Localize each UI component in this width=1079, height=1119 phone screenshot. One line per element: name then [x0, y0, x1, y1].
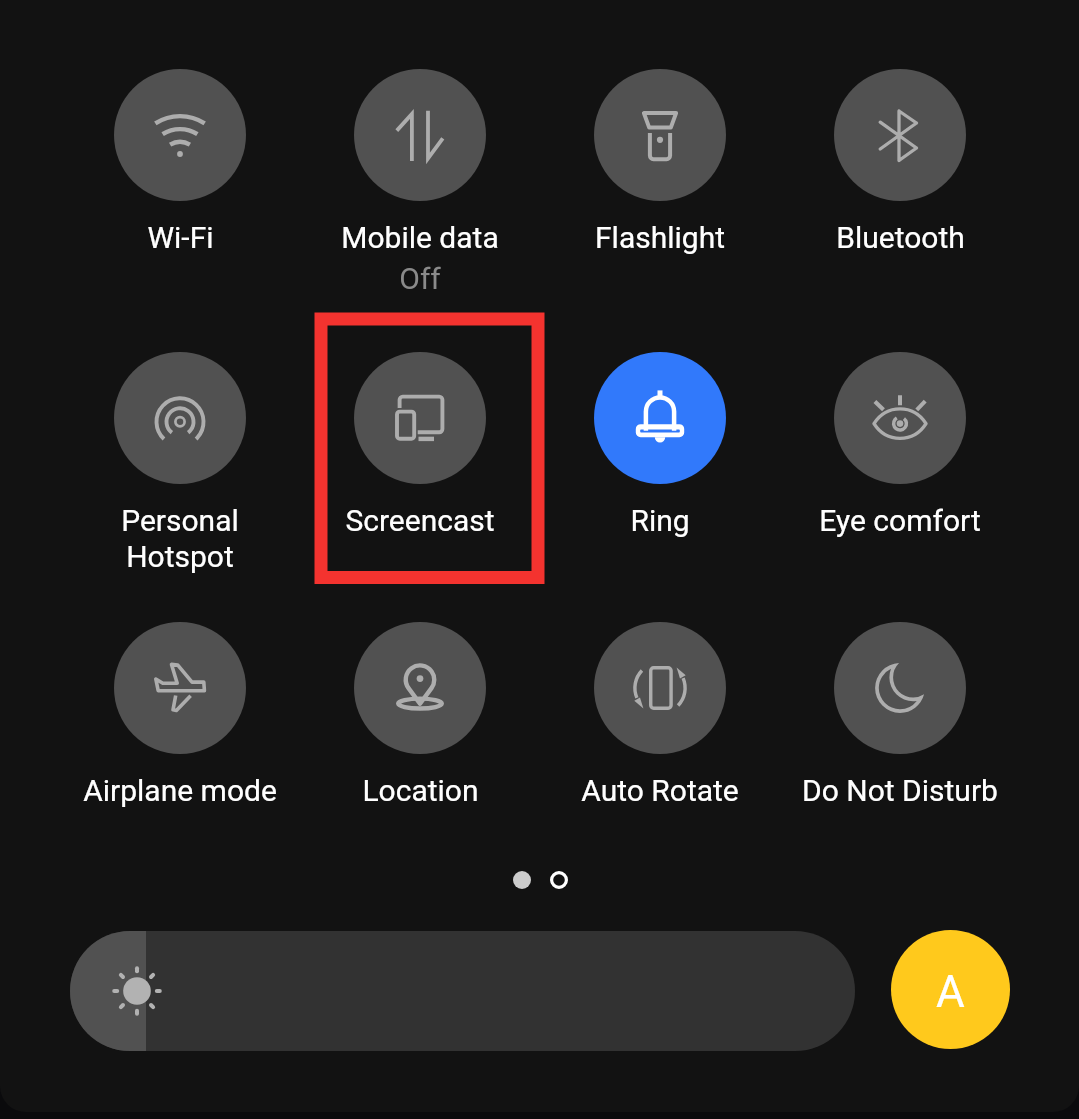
staticText: Screencast [345, 503, 495, 538]
staticText: Ring [630, 503, 690, 538]
staticText: Eye comfort [819, 503, 981, 538]
button[interactable]: Screencast [300, 352, 540, 538]
staticText: Wi-Fi [147, 220, 214, 255]
button[interactable]: Page 1 [513, 871, 531, 889]
button[interactable]: Eye comfort [780, 352, 1020, 538]
button[interactable]: Ring [540, 352, 780, 538]
staticText: Auto Rotate [581, 773, 739, 808]
button[interactable]: Personal Hotspot [60, 352, 300, 574]
button[interactable]: Brightness [70, 931, 855, 1051]
staticText: Airplane mode [83, 773, 277, 808]
button[interactable]: Mobile data [300, 69, 540, 290]
staticText: A [936, 966, 965, 1018]
staticText: Personal Hotspot [121, 503, 239, 574]
button[interactable]: Auto Rotate [540, 622, 780, 808]
staticText: Bluetooth [836, 220, 965, 255]
button[interactable]: Auto brightness [891, 930, 1010, 1049]
button[interactable]: Do Not Disturb [780, 622, 1020, 808]
staticText: Location [362, 773, 479, 808]
button[interactable]: Page 2 [550, 871, 568, 889]
button[interactable]: Airplane mode [60, 622, 300, 808]
staticText: Do Not Disturb [802, 773, 998, 808]
button[interactable]: Bluetooth [780, 69, 1020, 255]
button[interactable]: Wi-Fi [60, 69, 300, 255]
staticText: Mobile data [341, 220, 499, 255]
staticText: Flashlight [595, 220, 725, 255]
button[interactable]: Location [300, 622, 540, 808]
button[interactable]: Flashlight [540, 69, 780, 255]
staticText: Off [399, 261, 441, 296]
